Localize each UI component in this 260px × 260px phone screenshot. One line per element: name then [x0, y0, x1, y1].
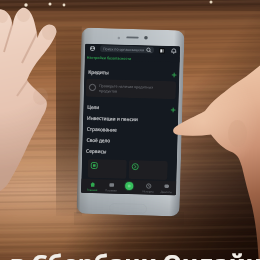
button[interactable]: Уведомления — [171, 48, 177, 54]
button[interactable]: Сервисы — [82, 146, 177, 159]
button[interactable]: СберБанк — [120, 180, 138, 194]
staticText: Цели — [87, 104, 99, 111]
button[interactable]: Профиль — [90, 46, 95, 51]
staticText: Страхование — [87, 126, 117, 134]
button[interactable] — [128, 160, 168, 180]
button[interactable]: Страхование — [83, 124, 178, 137]
staticText: Главная — [83, 188, 101, 192]
staticText: Платежи — [102, 188, 120, 193]
staticText: История — [139, 189, 157, 194]
staticText: в Сбербанк Онлайн — [10, 246, 260, 260]
staticText: Инвестиции и пенсии — [87, 115, 138, 123]
button[interactable]: Сканировать QR — [159, 48, 165, 54]
staticText: Кредиты — [88, 69, 109, 76]
button[interactable]: Цели — [83, 102, 178, 115]
button[interactable]: Поиск — [146, 47, 152, 54]
button[interactable] — [87, 159, 127, 179]
button[interactable]: Поиск по организациям — [100, 45, 154, 54]
button[interactable]: Своё дело — [82, 135, 178, 148]
staticText: Диалоги — [157, 190, 175, 194]
button[interactable]: Кредиты — [84, 67, 179, 80]
button[interactable]: Проверьте наличие кредитных продуктов — [86, 79, 176, 99]
staticText: Своё дело — [86, 137, 111, 144]
staticText: Настройки безопасности — [87, 55, 132, 61]
staticText: Сервисы — [86, 148, 107, 155]
staticText: Поиск по организациям — [103, 46, 145, 52]
button[interactable]: Диалоги — [157, 181, 175, 195]
button[interactable]: Главная — [83, 179, 101, 193]
staticText: Проверьте наличие кредитных продуктов — [99, 83, 154, 95]
button[interactable]: История — [139, 180, 157, 195]
button[interactable]: Платежи — [102, 179, 120, 194]
button[interactable]: Настройки безопасности — [85, 55, 180, 62]
button[interactable]: Инвестиции и пенсии — [83, 113, 178, 126]
